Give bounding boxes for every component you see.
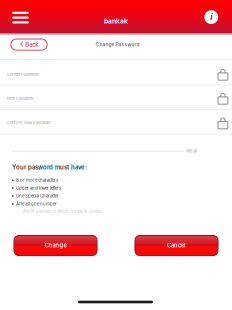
staticText: New Password [7, 96, 33, 101]
staticText: Back [25, 41, 38, 48]
staticText: Change Password [95, 42, 139, 47]
button[interactable]: Cancel [135, 235, 218, 255]
staticText: ‹ [20, 37, 24, 50]
button[interactable]: Change [14, 235, 97, 255]
staticText: Upper and lower letters [16, 186, 61, 191]
button[interactable]: Menu [8, 8, 32, 28]
staticText: Change [44, 242, 66, 249]
staticText: Cancel [167, 242, 186, 249]
staticText: At least one number [16, 201, 57, 207]
staticText: Avoid password which is easy to guess [23, 209, 101, 214]
staticText: Your pasword must have: [12, 164, 87, 171]
staticText: One Special Character [16, 193, 59, 199]
staticText: Weak [186, 148, 197, 154]
staticText: Confirm New Password [7, 120, 50, 125]
staticText: 8 or more characters [16, 178, 58, 183]
staticText: i [210, 12, 212, 22]
button[interactable]: Information [201, 7, 221, 27]
staticText: Current Password [7, 72, 38, 77]
button[interactable]: ‹ [11, 39, 47, 50]
staticText: bankak [104, 17, 128, 25]
